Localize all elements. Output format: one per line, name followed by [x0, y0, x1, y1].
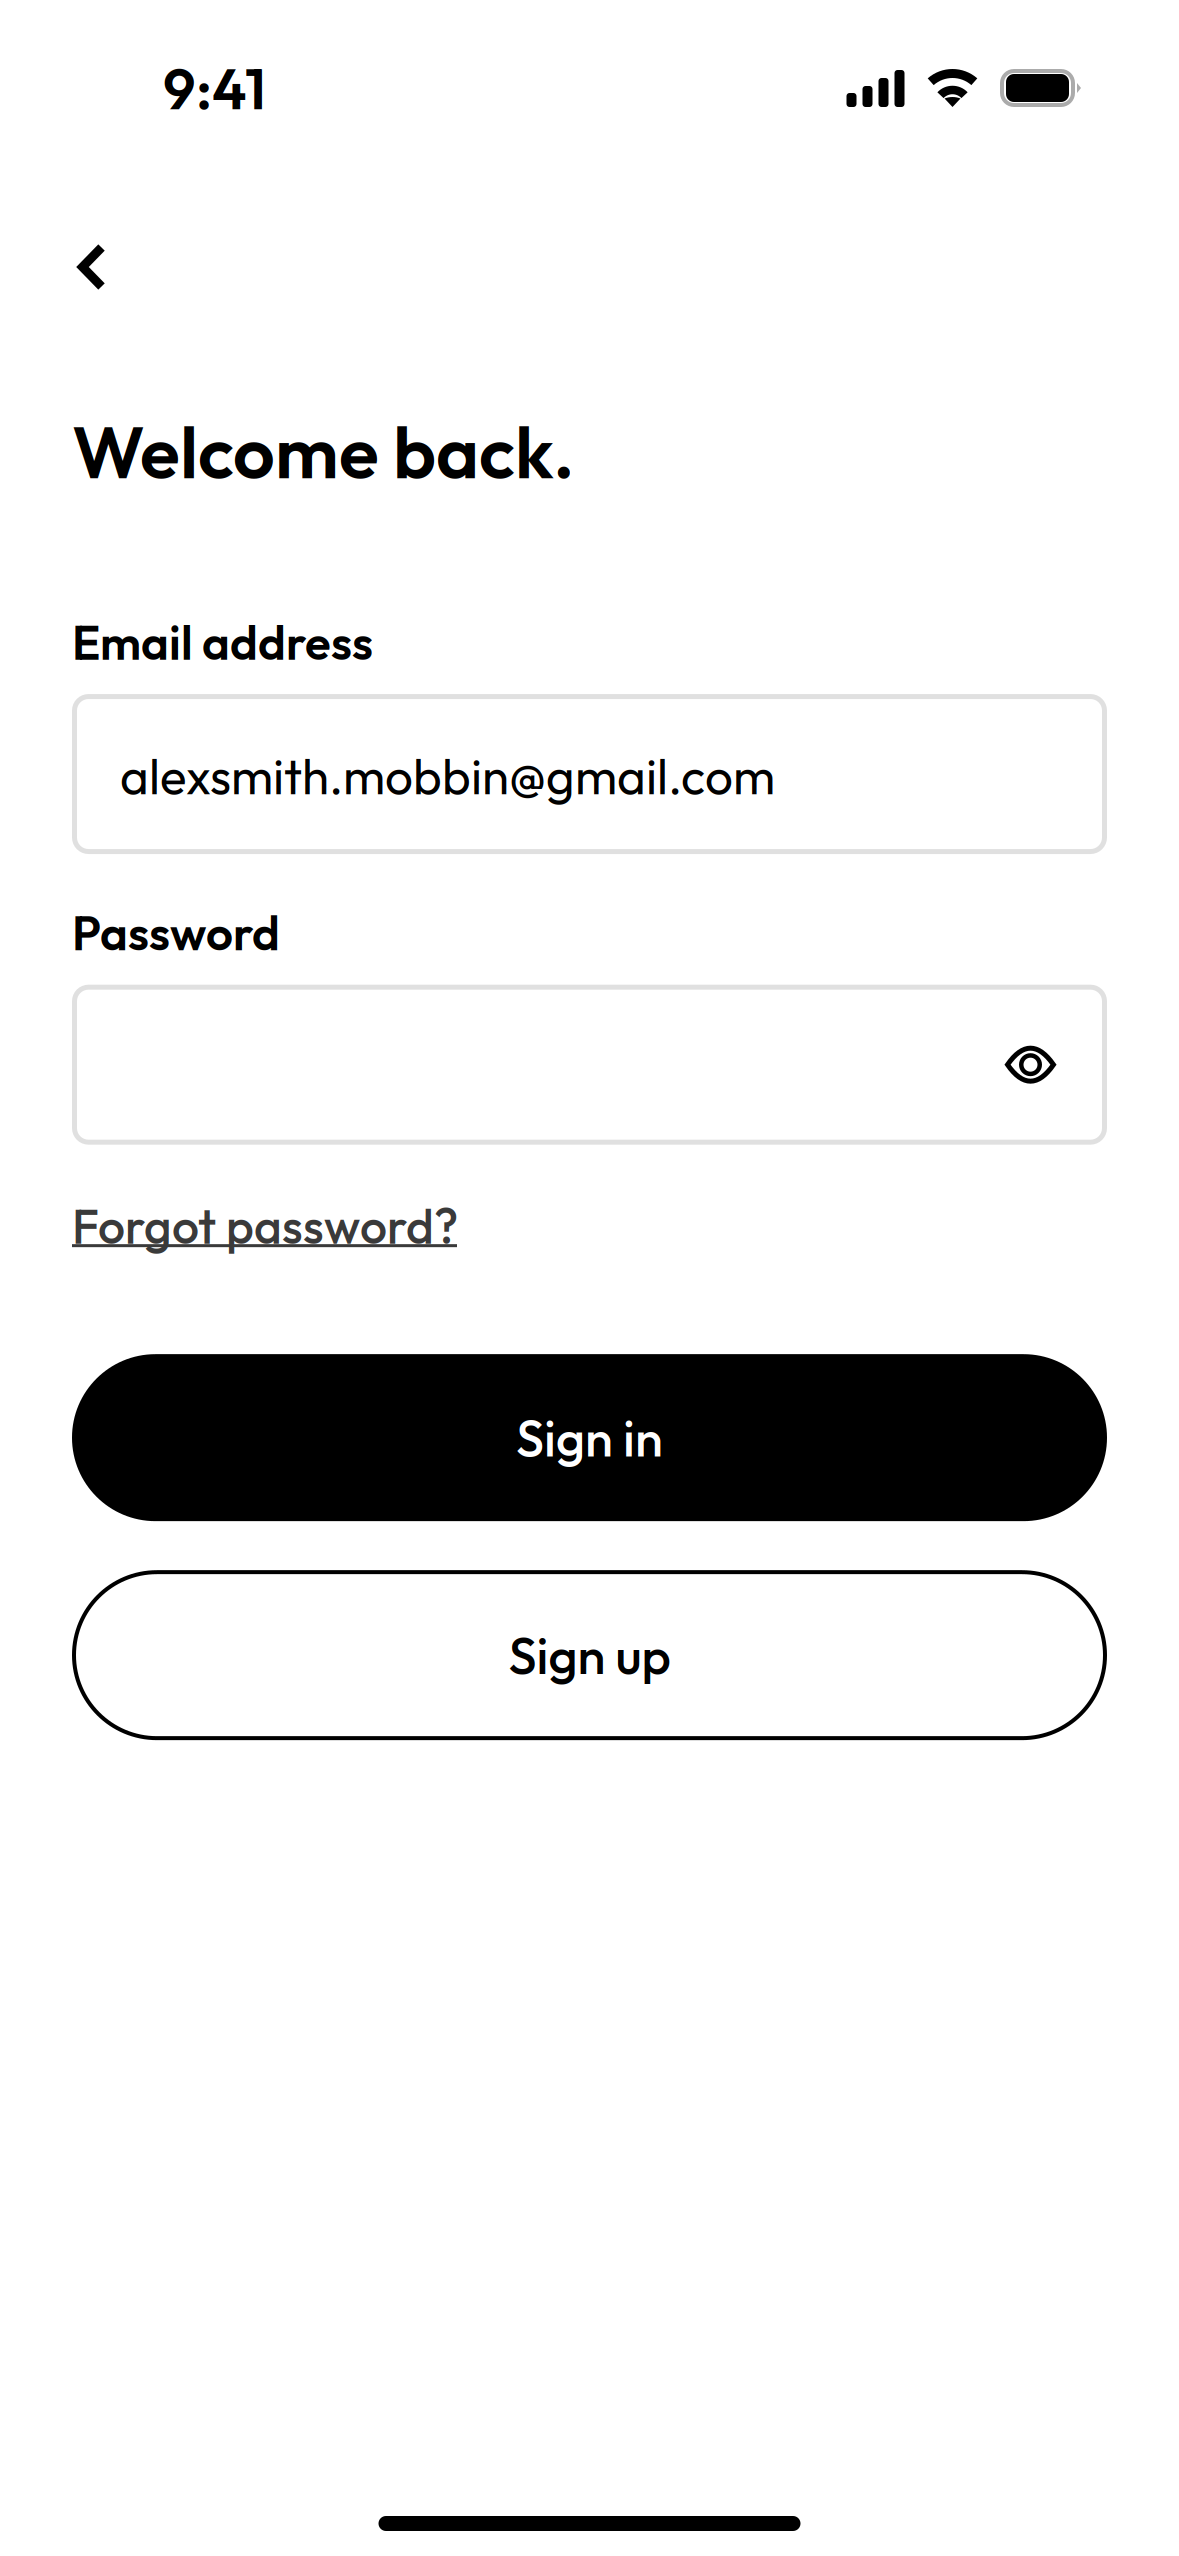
staticText: Password — [72, 903, 280, 963]
staticText: 9:41 — [163, 52, 266, 124]
staticText: Forgot password? — [72, 1196, 458, 1256]
staticText: Email address — [72, 612, 373, 672]
staticText: Sign up — [508, 1623, 670, 1687]
button[interactable]: Back — [0, 217, 140, 314]
button[interactable]: Sign in — [72, 1354, 1107, 1521]
staticText: alexsmith.mobbin@gmail.com — [120, 745, 775, 807]
button[interactable]: Sign up — [72, 1570, 1107, 1740]
staticText: Welcome back. — [72, 405, 575, 497]
button[interactable]: Forgot password? — [72, 1196, 458, 1256]
staticText: Sign in — [516, 1406, 663, 1469]
button[interactable]: alexsmith.mobbin@gmail.com — [72, 694, 1107, 854]
button[interactable]: Show password — [1005, 1017, 1107, 1113]
